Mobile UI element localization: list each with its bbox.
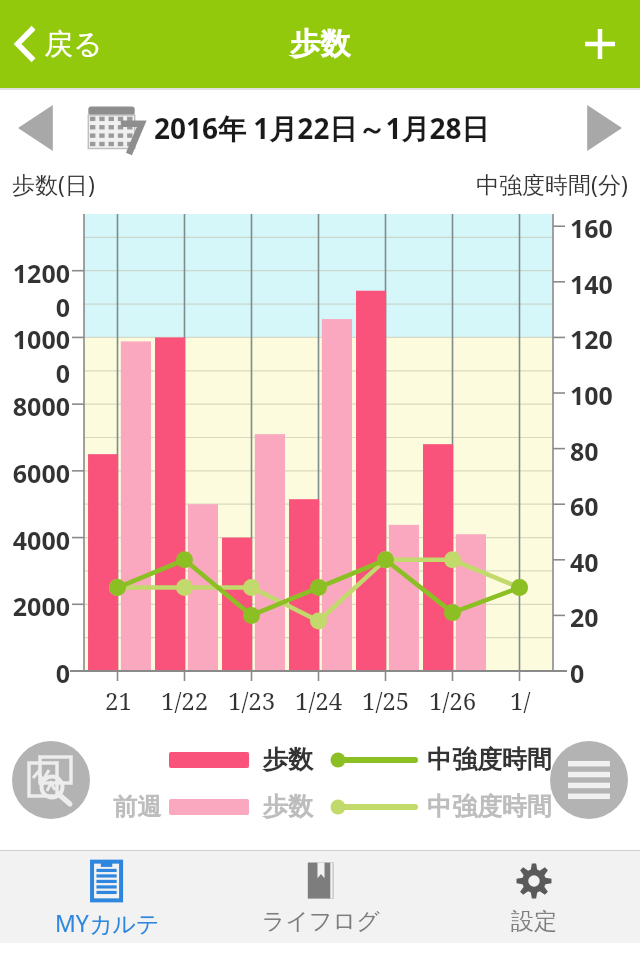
staticText: 設定: [511, 907, 557, 936]
staticText: 12000: [0, 256, 70, 324]
button[interactable]: Next week: [568, 90, 640, 166]
staticText: 2016年 1月22日～1月28日: [154, 109, 490, 147]
staticText: 0: [55, 656, 70, 690]
staticText: 0: [570, 656, 585, 690]
staticText: 歩数(日): [12, 168, 95, 199]
staticText: 1/24: [295, 684, 343, 717]
staticText: 6000: [12, 456, 70, 490]
button[interactable]: MYカルテ: [0, 851, 214, 943]
button[interactable]: List view: [550, 741, 628, 819]
staticText: MYカルテ: [55, 907, 160, 938]
staticText: 160: [570, 211, 613, 245]
staticText: 4000: [12, 523, 70, 557]
staticText: 1/25: [362, 684, 410, 717]
staticText: 前週: [113, 792, 161, 822]
staticText: 1/26: [429, 684, 477, 717]
button[interactable]: 設定: [427, 851, 640, 943]
staticText: 中強度時間: [427, 791, 552, 822]
button[interactable]: Add: [560, 0, 640, 88]
staticText: 歩数: [290, 25, 350, 63]
staticText: 中強度時間: [427, 744, 552, 775]
button[interactable]: 2016年 1月22日～1月28日: [86, 101, 490, 155]
button[interactable]: ライフログ: [214, 851, 427, 943]
staticText: 120: [570, 322, 613, 356]
staticText: 1/22: [161, 684, 209, 717]
staticText: 80: [570, 434, 599, 468]
button[interactable]: 戻る: [0, 0, 117, 88]
staticText: ライフログ: [262, 907, 380, 936]
staticText: 21: [105, 684, 132, 717]
staticText: 歩数: [263, 744, 313, 775]
button[interactable]: Previous week: [0, 90, 72, 166]
staticText: 40: [570, 545, 599, 579]
staticText: 歩数: [263, 791, 313, 822]
staticText: 中強度時間(分): [476, 168, 628, 199]
staticText: 2000: [12, 589, 70, 623]
staticText: 8000: [12, 389, 70, 423]
staticText: 1/23: [228, 684, 276, 717]
staticText: 戻る: [44, 26, 103, 63]
button[interactable]: Analyse report: [12, 741, 90, 819]
staticText: 1/: [510, 684, 531, 717]
staticText: 20: [570, 600, 599, 634]
staticText: 100: [570, 378, 613, 412]
staticText: 140: [570, 267, 613, 301]
staticText: 60: [570, 489, 599, 523]
staticText: 10000: [0, 322, 70, 390]
